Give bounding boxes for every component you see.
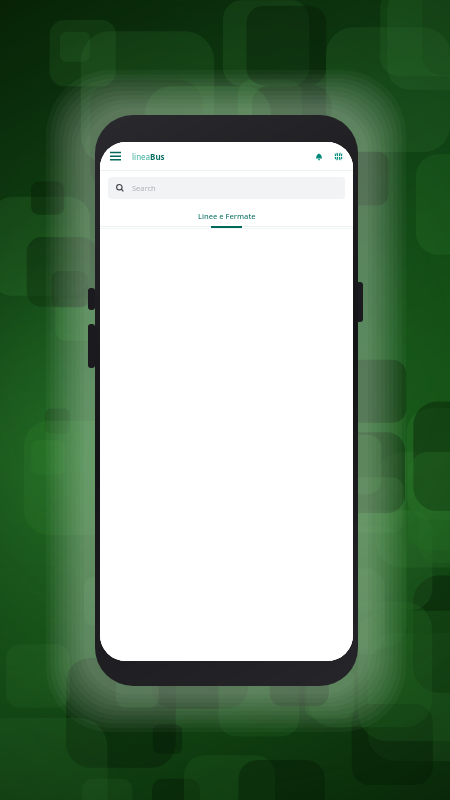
- button[interactable]: Open navigation menu: [107, 148, 123, 164]
- button[interactable]: lineaBus: [132, 151, 165, 162]
- button[interactable]: Linee e Fermate: [100, 205, 353, 226]
- button[interactable]: Change language: [331, 149, 346, 164]
- button[interactable]: Notifications: [311, 149, 326, 164]
- button[interactable]: Search: [108, 177, 345, 199]
- staticText: Search: [132, 183, 156, 193]
- staticText: Linee e Fermate: [198, 211, 256, 221]
